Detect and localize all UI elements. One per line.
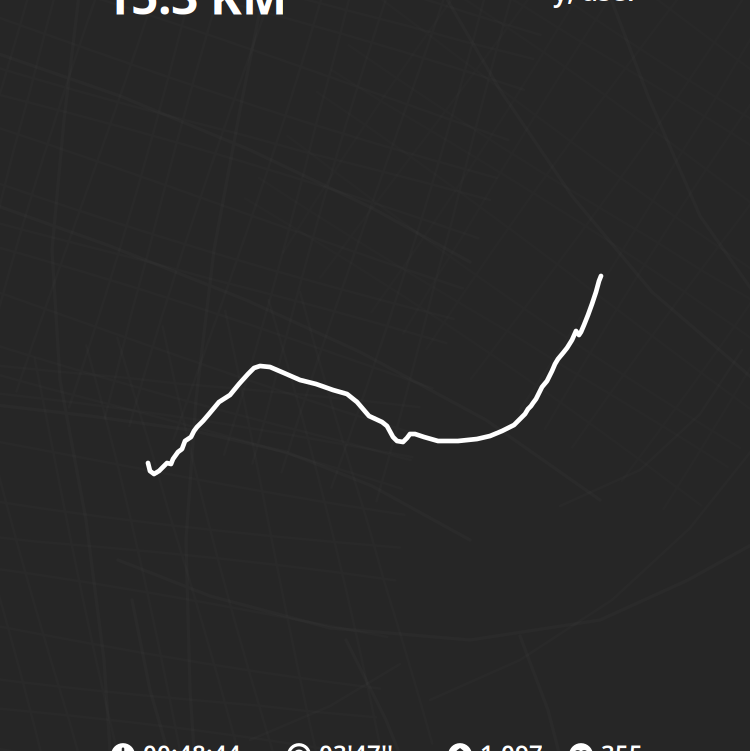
staticText: 03'47'' <box>319 737 393 751</box>
staticText: 355 <box>601 737 643 751</box>
staticText: y, user <box>553 0 639 8</box>
staticText: 00:48:44 <box>143 737 241 751</box>
staticText: 1.097 <box>480 737 543 751</box>
staticText: 15.3 KM <box>104 0 287 28</box>
